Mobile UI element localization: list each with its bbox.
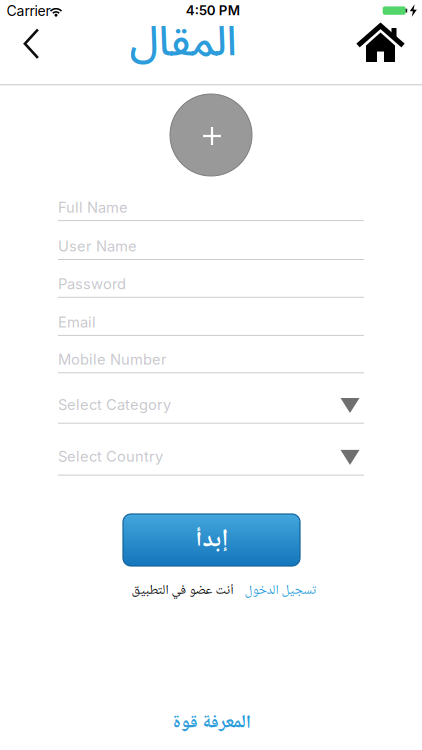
staticText: Select Country [58, 448, 163, 465]
button[interactable]: Mobile Number [58, 342, 364, 373]
staticText: Password [58, 275, 126, 293]
button[interactable]: Password [58, 267, 364, 298]
staticText: Mobile Number [58, 351, 167, 368]
button[interactable] [353, 21, 403, 67]
staticText: Select Category [58, 396, 171, 413]
staticText: المعرفة قوة [172, 710, 250, 736]
staticText: إبدأ [195, 524, 228, 556]
button[interactable]: Select Category [58, 386, 364, 424]
staticText: User Name [58, 237, 137, 255]
staticText: المقال [129, 11, 236, 68]
staticText: 4:50 PM [186, 2, 240, 18]
button[interactable]: Email [58, 305, 364, 336]
button[interactable]: Select Country [58, 438, 364, 476]
button[interactable]: إبدأ [123, 514, 300, 566]
button[interactable] [170, 94, 252, 176]
staticText: أنت عضو في التطبيق [131, 581, 233, 600]
staticText: Full Name [58, 198, 128, 216]
staticText: Carrier [6, 2, 50, 19]
staticText: تسجيل الدخول [244, 581, 316, 600]
button[interactable]: User Name [58, 229, 364, 260]
button[interactable] [9, 22, 53, 66]
button[interactable]: تسجيل الدخول [244, 581, 316, 600]
button[interactable]: Full Name [58, 190, 364, 221]
staticText: Email [58, 313, 96, 331]
